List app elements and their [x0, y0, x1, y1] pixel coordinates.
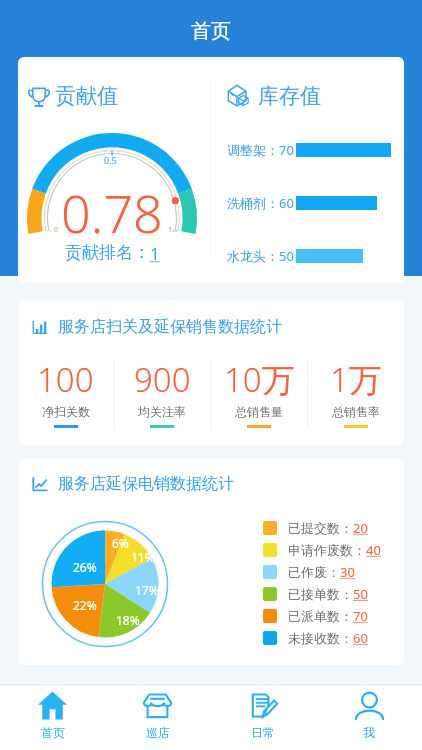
staticText: 已作废： [288, 564, 340, 580]
staticText: 库存值 [258, 83, 321, 107]
staticText: 贡献值 [55, 83, 118, 107]
staticText: 0 [54, 225, 59, 235]
staticText: 900 [134, 357, 191, 402]
staticText: 净扫关数 [42, 404, 90, 419]
button[interactable]: 900 [114, 352, 210, 432]
button[interactable]: 100 [18, 352, 113, 432]
staticText: 26% [73, 559, 97, 575]
button[interactable]: 未接收数： [263, 627, 368, 649]
staticText: 50 [353, 585, 368, 603]
staticText: 10万 [224, 357, 295, 402]
staticText: 首页 [191, 19, 231, 44]
button[interactable]: 10万 [211, 352, 307, 432]
staticText: 调整架：70 [227, 141, 295, 159]
staticText: 1万 [330, 357, 382, 402]
staticText: 水龙头：50 [227, 247, 295, 265]
staticText: 70 [353, 607, 368, 625]
staticText: 日常 [251, 725, 275, 740]
staticText: 100 [37, 357, 94, 402]
staticText: 18% [116, 612, 140, 628]
staticText: 服务店扫关及延保销售数据统计 [58, 317, 282, 337]
button[interactable]: 已作废： [263, 561, 355, 583]
button[interactable]: Me [316, 685, 422, 750]
button[interactable]: 1万 [308, 352, 404, 432]
staticText: 我 [363, 725, 375, 740]
staticText: 0.5 [104, 154, 117, 166]
staticText: 22% [73, 597, 97, 613]
staticText: 服务店延保电销数据统计 [58, 474, 234, 494]
staticText: 17% [135, 582, 159, 598]
button[interactable]: Store visits [105, 685, 210, 750]
staticText: 1 [150, 242, 160, 265]
button[interactable]: 已接单数： [263, 583, 368, 605]
staticText: 首页 [41, 725, 65, 740]
staticText: 未接收数： [288, 630, 353, 646]
staticText: 1 [168, 225, 173, 235]
staticText: 已接单数： [288, 586, 353, 602]
button[interactable]: 已派单数： [263, 605, 368, 627]
button[interactable]: Daily [210, 685, 316, 750]
staticText: 洗桶剂：60 [227, 194, 295, 212]
staticText: 申请作废数： [288, 542, 366, 558]
staticText: 11% [131, 549, 155, 565]
staticText: 60 [353, 629, 368, 647]
button[interactable]: 已提交数： [263, 517, 368, 539]
staticText: 已派单数： [288, 608, 353, 624]
staticText: 30 [340, 563, 355, 581]
staticText: 总销售量 [235, 404, 283, 419]
staticText: 20 [353, 519, 368, 537]
staticText: 贡献排名： [65, 242, 150, 263]
staticText: 6% [112, 535, 129, 551]
staticText: 均关注率 [138, 404, 186, 419]
staticText: 0.78 [61, 177, 163, 248]
staticText: 巡店 [146, 725, 170, 740]
button[interactable]: 申请作废数： [263, 539, 381, 561]
staticText: 已提交数： [288, 520, 353, 536]
staticText: 40 [366, 541, 381, 559]
staticText: 总销售率 [332, 404, 380, 419]
button[interactable]: Home [0, 685, 105, 750]
